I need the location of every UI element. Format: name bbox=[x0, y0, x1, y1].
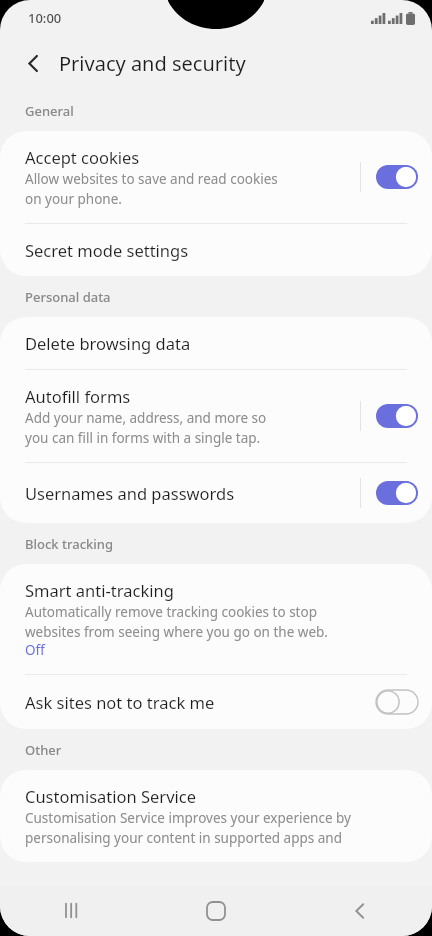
button[interactable]: Home bbox=[144, 885, 288, 936]
staticText: General bbox=[25, 102, 74, 120]
staticText: Off bbox=[25, 641, 45, 659]
button[interactable]: Switch on bbox=[376, 165, 418, 189]
staticText: Block tracking bbox=[25, 535, 114, 553]
staticText: Usernames and passwords bbox=[25, 482, 235, 504]
staticText: Other bbox=[25, 741, 62, 759]
staticText: Delete browsing data bbox=[25, 332, 191, 354]
button[interactable]: Ask sites not to track me bbox=[0, 675, 432, 729]
staticText: Smart anti-tracking bbox=[25, 579, 174, 601]
staticText: Ask sites not to track me bbox=[25, 691, 215, 713]
button[interactable]: Usernames and passwords bbox=[0, 463, 432, 523]
staticText: Privacy and security bbox=[59, 50, 246, 77]
staticText: Automatically remove tracking cookies to… bbox=[25, 603, 328, 641]
staticText: Customisation Service improves your expe… bbox=[25, 809, 351, 847]
button[interactable]: Accept cookies bbox=[0, 131, 432, 223]
button[interactable]: Recent apps bbox=[0, 885, 144, 936]
staticText: 10:00 bbox=[28, 9, 62, 27]
button[interactable]: Delete browsing data bbox=[0, 317, 432, 369]
staticText: Allow websites to save and read cookies … bbox=[25, 170, 278, 208]
staticText: Autofill forms bbox=[25, 385, 131, 407]
button[interactable]: Smart anti-tracking bbox=[0, 564, 432, 674]
button[interactable]: Switch on bbox=[376, 481, 418, 505]
staticText: Personal data bbox=[25, 288, 111, 306]
staticText: Secret mode settings bbox=[25, 239, 189, 261]
button[interactable]: Back bbox=[288, 885, 432, 936]
staticText: Customisation Service bbox=[25, 785, 197, 807]
staticText: Accept cookies bbox=[25, 146, 140, 168]
button[interactable]: Switch on bbox=[376, 404, 418, 428]
button[interactable]: Switch off bbox=[376, 690, 418, 714]
button[interactable]: Customisation Service bbox=[0, 770, 432, 862]
staticText: Add your name, address, and more so you … bbox=[25, 409, 267, 447]
button[interactable]: Secret mode settings bbox=[0, 224, 432, 276]
button[interactable]: Autofill forms bbox=[0, 370, 432, 462]
button[interactable]: Back bbox=[14, 44, 52, 82]
